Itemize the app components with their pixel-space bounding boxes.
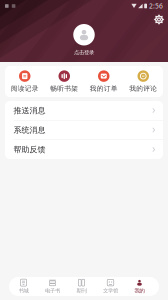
staticText: 推送消息 xyxy=(13,106,45,115)
staticText: 畅听书架 xyxy=(50,84,78,93)
button[interactable]: 我的评论 xyxy=(123,66,163,97)
staticText: 阅读记录 xyxy=(11,84,39,93)
button[interactable]: 推送消息 xyxy=(5,101,163,120)
staticText: 我的评论 xyxy=(129,84,157,93)
button[interactable]: 文学馆 xyxy=(96,277,125,295)
button[interactable]: 我的 xyxy=(125,277,154,295)
staticText: 我的 xyxy=(134,287,144,294)
button[interactable]: 书城 xyxy=(9,277,38,295)
staticText: 2:56 xyxy=(149,2,163,10)
button[interactable]: 阅读记录 xyxy=(5,66,44,97)
staticText: 系统消息 xyxy=(13,125,45,135)
staticText: 我的订单 xyxy=(90,84,118,93)
staticText: 点击登录 xyxy=(74,49,94,56)
button[interactable]: 电子书 xyxy=(38,277,67,295)
button[interactable]: 帮助反馈 xyxy=(5,140,163,159)
button[interactable]: 我的订单 xyxy=(84,66,123,97)
button[interactable]: 期刊 xyxy=(67,277,96,295)
button[interactable]: 设置 xyxy=(154,15,163,24)
button[interactable]: 点击登录 xyxy=(73,24,95,56)
staticText: 帮助反馈 xyxy=(13,145,45,154)
staticText: 书城 xyxy=(18,287,28,294)
staticText: 文学馆 xyxy=(103,287,118,294)
button[interactable]: 畅听书架 xyxy=(44,66,84,97)
button[interactable]: 系统消息 xyxy=(5,120,163,139)
staticText: 期刊 xyxy=(76,287,86,294)
staticText: 电子书 xyxy=(45,287,60,294)
